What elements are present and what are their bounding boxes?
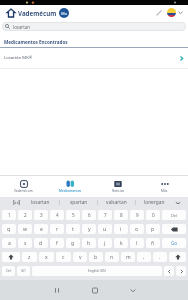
staticText: Más (161, 189, 168, 193)
staticText: 2 (24, 212, 27, 218)
button[interactable]: , (137, 252, 151, 262)
staticText: Del (171, 213, 177, 218)
button[interactable] (2, 252, 20, 262)
button[interactable]: b (89, 252, 103, 262)
button[interactable]: y (82, 224, 96, 234)
staticText: Medicamentos Encontrados (4, 39, 68, 45)
button[interactable]: . (153, 252, 167, 262)
staticText: English (US) (88, 269, 106, 273)
button[interactable]: !#1 (17, 266, 30, 276)
staticText: s (24, 240, 27, 247)
button[interactable]: losartan (2, 22, 186, 31)
button[interactable] (162, 224, 186, 234)
button[interactable]: p (146, 224, 160, 234)
button[interactable]: n (105, 252, 119, 262)
button[interactable]: 2 (18, 210, 32, 220)
button[interactable]: t (66, 224, 80, 234)
button[interactable]: 3 (34, 210, 48, 220)
button[interactable]: e (34, 224, 48, 234)
staticText: 9 (136, 212, 139, 218)
button[interactable]: losartan (22, 197, 59, 208)
button[interactable]: Noticias (94, 176, 141, 197)
staticText: u (103, 226, 107, 233)
staticText: 6 (88, 212, 91, 218)
staticText: v (79, 254, 82, 261)
button[interactable]: u (98, 224, 112, 234)
button[interactable]: i (114, 224, 128, 234)
button[interactable]: c (56, 252, 71, 262)
button[interactable]: o (130, 224, 144, 234)
button[interactable]: l (130, 238, 144, 248)
button[interactable]: English (US) (32, 266, 162, 276)
button[interactable]: d (34, 238, 48, 248)
staticText: 5 (72, 212, 75, 218)
staticText: m (126, 254, 131, 261)
staticText: losartan (13, 24, 30, 30)
staticText: Vademécum (14, 189, 33, 193)
button[interactable]: Más (141, 176, 188, 197)
staticText: 0 (152, 212, 155, 218)
button[interactable]: s (18, 238, 32, 248)
button[interactable]: 8 (114, 210, 128, 220)
staticText: Mx (61, 11, 68, 16)
button[interactable] (169, 252, 186, 262)
button[interactable] (164, 266, 174, 276)
button[interactable]: lonergan (136, 197, 173, 208)
button[interactable]: w (18, 224, 32, 234)
staticText: e (40, 226, 43, 233)
button[interactable]: 9 (130, 210, 144, 220)
staticText: n (110, 254, 114, 261)
staticText: , (143, 254, 145, 261)
button[interactable] (62, 280, 125, 300)
button[interactable]: r (50, 224, 64, 234)
button[interactable]: Medicamentos (47, 176, 94, 197)
staticText: c (62, 254, 65, 261)
staticText: r (56, 226, 59, 233)
staticText: Ctrl (6, 269, 12, 273)
staticText: Medicamentos (59, 189, 82, 193)
button[interactable] (13, 199, 20, 206)
button[interactable] (167, 8, 176, 17)
staticText: j (104, 240, 106, 247)
staticText: Vademécum (18, 9, 57, 17)
button[interactable]: a (2, 238, 16, 248)
button[interactable]: g (66, 238, 80, 248)
button[interactable]: Ctrl (2, 266, 15, 276)
button[interactable]: 7 (98, 210, 112, 220)
button[interactable]: valsartan (98, 197, 135, 208)
staticText: f (56, 240, 58, 247)
staticText: lonergan (144, 199, 165, 206)
button[interactable]: h (82, 238, 96, 248)
button[interactable] (0, 280, 62, 300)
button[interactable]: q (2, 224, 16, 234)
button[interactable]: ñ (146, 238, 160, 248)
button[interactable] (7, 9, 15, 17)
button[interactable]: Vademécum (0, 176, 47, 197)
button[interactable]: v (73, 252, 87, 262)
staticText: g (71, 240, 75, 247)
staticText: 1 (8, 212, 11, 218)
button[interactable]: Go (162, 238, 186, 248)
button[interactable]: k (114, 238, 128, 248)
staticText: x (45, 254, 48, 261)
button[interactable]: 1 (2, 210, 16, 220)
staticText: o (135, 226, 139, 233)
button[interactable]: x (39, 252, 54, 262)
button[interactable] (176, 266, 186, 276)
button[interactable] (125, 280, 188, 300)
button[interactable]: m (121, 252, 135, 262)
button[interactable]: j (98, 238, 112, 248)
button[interactable] (175, 200, 181, 206)
button[interactable]: 6 (82, 210, 96, 220)
button[interactable]: Del (162, 210, 186, 220)
button[interactable]: 5 (66, 210, 80, 220)
button[interactable]: spartan (60, 197, 97, 208)
button[interactable]: 0 (146, 210, 160, 220)
button[interactable]: 4 (50, 210, 64, 220)
button[interactable]: z (22, 252, 37, 262)
button[interactable]: f (50, 238, 64, 248)
button[interactable]: Losartán MK® (0, 48, 188, 68)
staticText: 8 (120, 212, 123, 218)
staticText: valsartan (106, 199, 127, 206)
staticText: . (159, 254, 161, 261)
